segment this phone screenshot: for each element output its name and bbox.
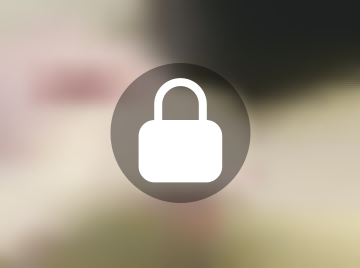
button[interactable]: Unlock — [110, 63, 250, 203]
